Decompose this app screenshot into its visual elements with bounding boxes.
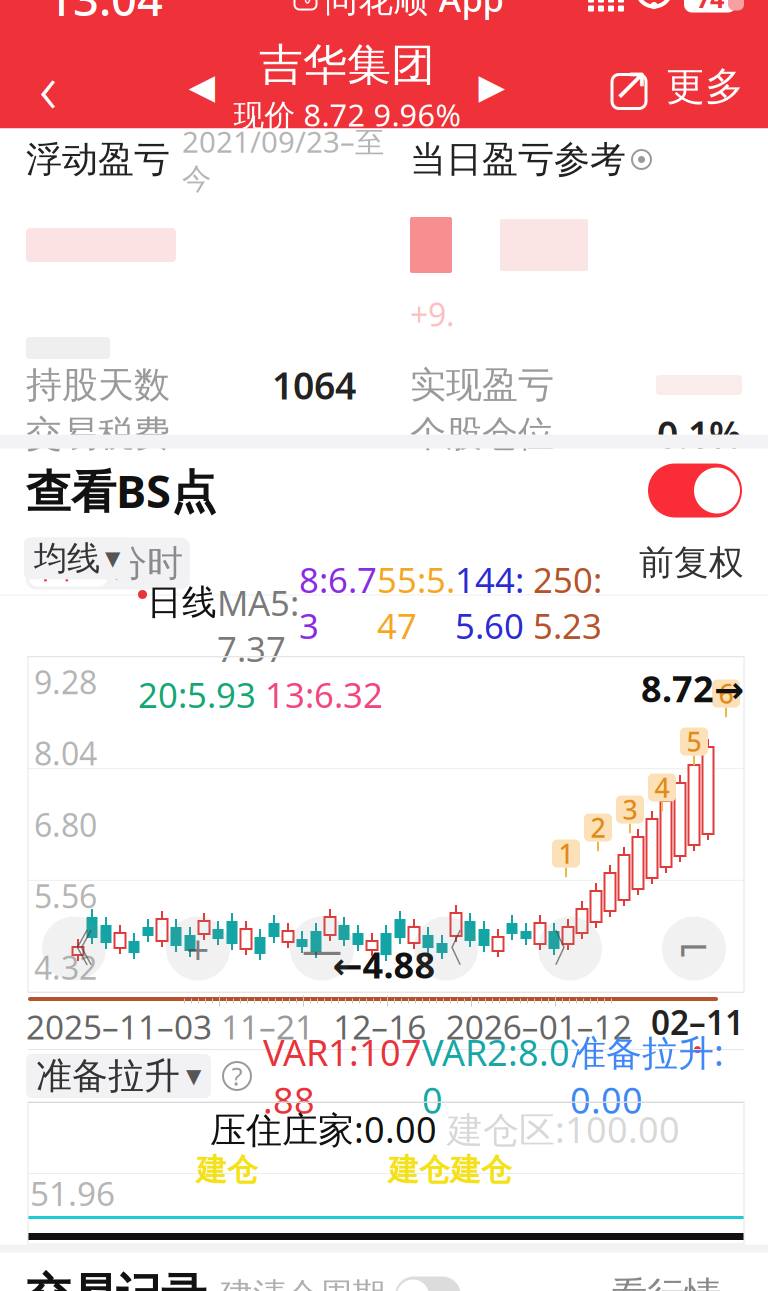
staticText: 实现盈亏 xyxy=(410,363,554,407)
button[interactable]: 向右 xyxy=(538,916,602,980)
staticText: ▼ xyxy=(105,547,120,570)
staticText: 13:6.32 xyxy=(265,671,383,717)
staticText: ▶ xyxy=(478,67,505,106)
staticText: 建仓区:100.00 xyxy=(447,1105,680,1153)
button[interactable]: 前复权 xyxy=(639,533,744,584)
staticText: 个股仓位 xyxy=(410,412,554,456)
staticText: VAR1:107.88 xyxy=(263,1028,422,1124)
staticText: 2025–11–03 xyxy=(26,1004,212,1049)
staticText: ↗ xyxy=(612,58,650,109)
staticText: 3 xyxy=(622,792,637,827)
button[interactable]: 缩小 xyxy=(290,916,354,980)
staticText: 8.72→ xyxy=(641,664,744,712)
button[interactable]: 建清仓周期开关 xyxy=(395,1276,461,1291)
staticText: 日K xyxy=(38,540,97,587)
staticText: 8.04 xyxy=(34,732,97,774)
button[interactable]: 看行情 xyxy=(610,1267,742,1291)
staticText: 持股天数 xyxy=(26,363,170,407)
staticText: 《 xyxy=(54,924,94,973)
staticText: 2 xyxy=(590,810,605,845)
staticText: ▼ xyxy=(186,1065,201,1087)
staticText: 9.28 xyxy=(34,660,97,703)
staticText: 74 xyxy=(696,0,724,15)
button[interactable]: 全屏 xyxy=(662,916,726,980)
staticText: 2026–01–12 xyxy=(446,1004,632,1049)
staticText: 当日盈亏参考 xyxy=(410,137,626,182)
staticText: 压住庄家:0.00 xyxy=(210,1105,437,1153)
staticText: 12–16 xyxy=(333,1004,426,1049)
staticText: 13:04 xyxy=(47,0,163,29)
button[interactable]: 向左 xyxy=(414,916,478,980)
staticText: ◀ xyxy=(188,67,215,106)
staticText: 4.32 xyxy=(34,946,97,988)
staticText: 8:6.73 xyxy=(299,556,377,648)
staticText: 5 xyxy=(686,724,701,759)
staticText: 准备拉升 xyxy=(36,1054,180,1098)
staticText: — xyxy=(302,922,342,975)
button[interactable]: 上一只 xyxy=(172,44,232,128)
button[interactable]: 指标说明 xyxy=(223,1059,251,1093)
button[interactable]: 分时 xyxy=(107,540,187,586)
staticText: 51.96 xyxy=(30,1171,115,1215)
staticText: 交易税费 xyxy=(26,412,170,456)
button[interactable]: 日K xyxy=(29,540,107,586)
staticText: 〉 xyxy=(550,924,590,973)
staticText: ←4.88 xyxy=(332,941,435,988)
staticText: 建仓 xyxy=(196,1151,258,1189)
staticText: 建清仓周期 xyxy=(220,1275,385,1291)
staticText: 11–21 xyxy=(212,1004,314,1049)
staticText: ∿ xyxy=(298,0,313,8)
staticText: 交易记录 xyxy=(26,1268,206,1291)
button[interactable]: 准备拉升 xyxy=(26,1054,211,1098)
staticText: 均线 xyxy=(34,538,100,579)
staticText: 前复权 xyxy=(639,541,744,584)
button[interactable]: 查看BS点开关 xyxy=(648,463,742,517)
staticText: +9. xyxy=(410,293,455,335)
staticText: 看行情 xyxy=(610,1273,721,1291)
staticText: 现价 8.72 9.96% xyxy=(233,94,460,135)
staticText: 吉华集团 xyxy=(259,38,435,92)
staticText: ? xyxy=(231,1059,242,1093)
staticText: 2021/09/23–至今 xyxy=(182,122,384,197)
staticText: 144:5.60 xyxy=(455,556,533,648)
staticText: ⌐ xyxy=(677,926,711,971)
staticText: 250:5.23 xyxy=(533,556,602,648)
staticText: 20:5.93 xyxy=(138,671,265,717)
staticText: 建仓 xyxy=(450,1151,512,1189)
staticText: 5.56 xyxy=(34,875,97,917)
staticText: 4 xyxy=(654,770,669,805)
staticText: + xyxy=(186,922,209,975)
button[interactable]: 放大 xyxy=(166,916,230,980)
staticText: 〈 xyxy=(426,924,466,973)
button[interactable]: 分享 xyxy=(598,44,660,128)
staticText: 1064 xyxy=(272,360,356,410)
staticText: MA5:7.37 xyxy=(217,533,299,671)
staticText: 6 xyxy=(718,676,733,711)
staticText: 02–11 xyxy=(651,1000,744,1044)
button[interactable]: 左翻页 xyxy=(42,916,106,980)
button[interactable]: 返回 xyxy=(0,44,96,128)
staticText: 建仓 xyxy=(388,1151,450,1189)
staticText: ‹ xyxy=(39,40,57,133)
button[interactable]: 下一只 xyxy=(462,44,522,128)
staticText: 日线 xyxy=(147,581,217,624)
button[interactable]: 均线 xyxy=(24,537,130,579)
staticText: 1 xyxy=(558,836,573,871)
staticText: 0.1% xyxy=(657,409,742,459)
staticText: 更多 xyxy=(666,63,744,110)
staticText: VAR2:8.00 xyxy=(422,1028,570,1124)
button[interactable]: 更多 xyxy=(660,44,768,128)
staticText: 6.80 xyxy=(34,803,97,846)
staticText: 浮动盈亏 xyxy=(26,137,170,182)
staticText: 查看BS点 xyxy=(26,460,216,521)
staticText: 准备拉升:0.00 xyxy=(570,1028,724,1124)
staticText: 分时 xyxy=(111,541,183,586)
staticText: 55:5.47 xyxy=(377,556,455,648)
staticText: 同花顺 App xyxy=(323,0,503,21)
